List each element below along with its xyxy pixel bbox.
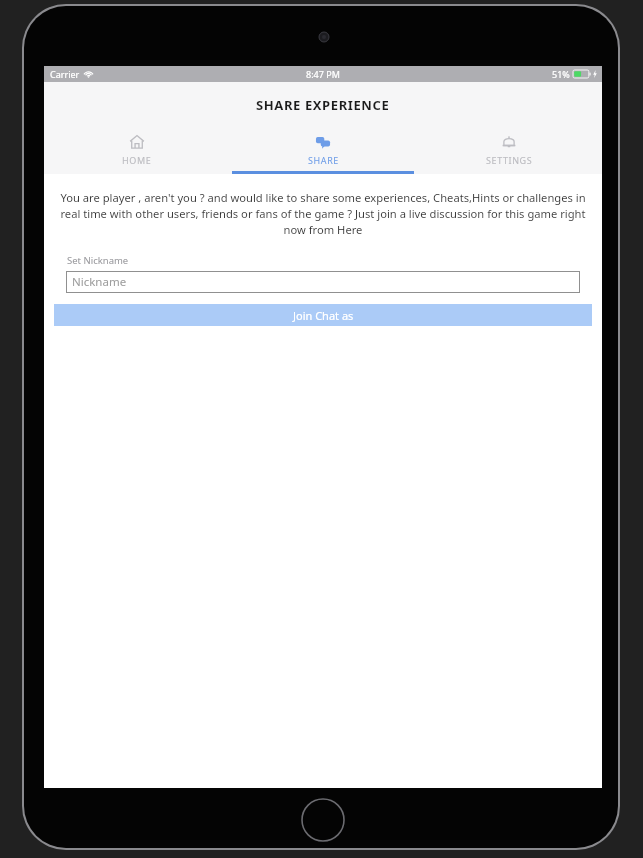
- button[interactable]: Share: [230, 128, 416, 174]
- button[interactable]: Settings: [416, 128, 602, 171]
- staticText: SHARE EXPERIENCE: [256, 96, 390, 114]
- staticText: HOME: [122, 154, 152, 166]
- button[interactable]: Join Chat as: [54, 304, 592, 326]
- staticText: SHARE: [308, 154, 339, 166]
- staticText: 8:47 PM: [306, 68, 340, 80]
- button[interactable]: Nickname: [66, 271, 580, 293]
- staticText: 51%: [552, 68, 570, 80]
- other: Share: [315, 134, 331, 150]
- staticText: Set Nickname: [67, 254, 129, 267]
- other: Home: [129, 134, 145, 150]
- button[interactable]: Home: [44, 128, 230, 171]
- staticText: You are player , aren't you ? and would …: [58, 190, 588, 237]
- other: Settings: [501, 134, 517, 150]
- staticText: Join Chat as: [293, 308, 354, 323]
- staticText: Nickname: [72, 274, 127, 290]
- staticText: SETTINGS: [486, 154, 533, 166]
- staticText: Carrier: [50, 68, 80, 80]
